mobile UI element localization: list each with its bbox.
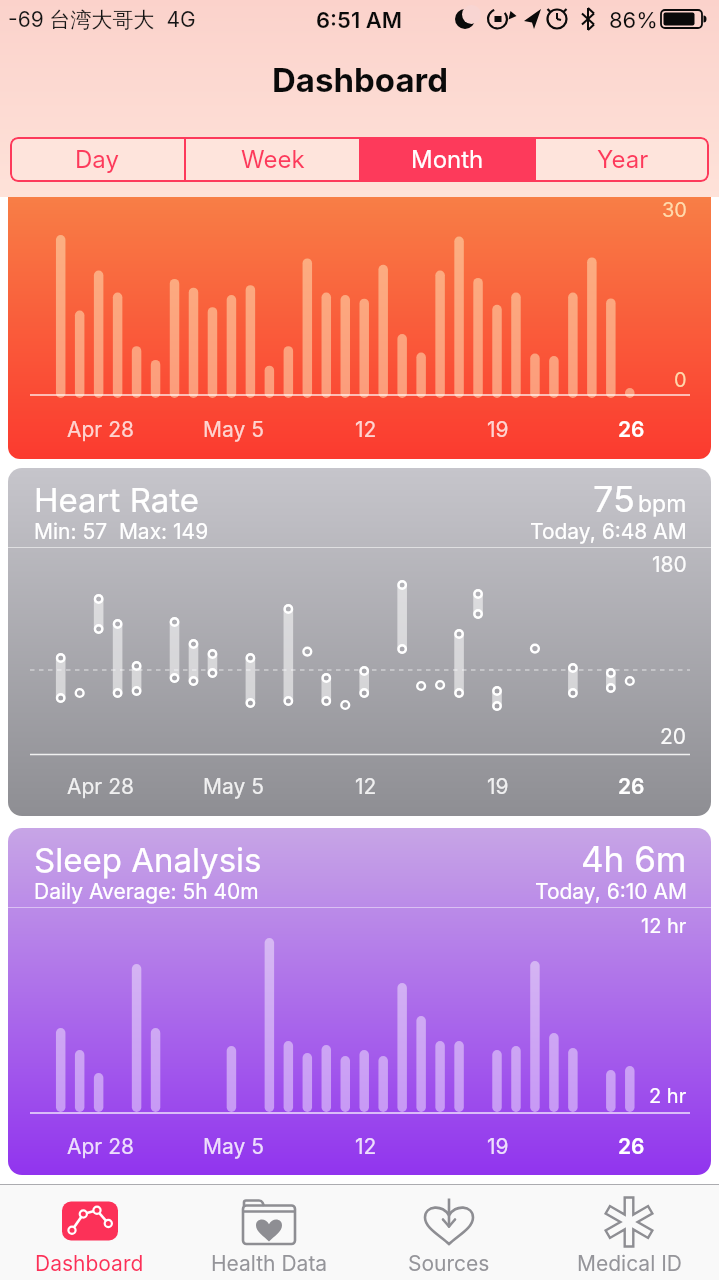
staticText: 2 hr (649, 1084, 687, 1108)
staticText: 0 (674, 368, 687, 392)
staticText: Sleep Analysis (34, 840, 262, 880)
staticText: 75 (593, 477, 635, 521)
staticText: 26 (618, 774, 645, 799)
staticText: Health Data (211, 1251, 328, 1276)
staticText: Daily Average: 5h 40m (34, 879, 259, 904)
button[interactable]: Dashboard (0, 1185, 179, 1280)
staticText: Month (411, 145, 484, 174)
staticText: 4h 6m (581, 838, 687, 880)
staticText: 30 (662, 198, 687, 222)
staticText: 6:51 AM (316, 7, 403, 34)
button[interactable]: Heart Rate (8, 468, 711, 816)
staticText: Heart Rate (34, 480, 199, 520)
staticText: Sources (408, 1251, 490, 1276)
staticText: 86% (609, 7, 658, 34)
staticText: 26 (618, 1134, 645, 1159)
staticText: Min: 57 Max: 149 (34, 519, 209, 544)
staticText: Day (75, 145, 119, 174)
staticText: Apr 28 (67, 1134, 134, 1159)
staticText: Dashboard (35, 1251, 144, 1276)
staticText: 19 (487, 1134, 509, 1159)
button[interactable]: Year (536, 137, 709, 182)
staticText: 26 (618, 417, 645, 442)
button[interactable]: Medical ID (539, 1185, 719, 1280)
staticText: 12 (355, 774, 377, 799)
staticText: -69 台湾大哥大 4G (8, 7, 196, 34)
staticText: 12 hr (641, 914, 687, 938)
button[interactable]: Sleep Analysis (8, 828, 711, 1175)
staticText: Today, 6:10 AM (535, 879, 687, 904)
button[interactable]: Day (10, 137, 184, 182)
staticText: 20 (660, 724, 687, 749)
staticText: Week (241, 145, 305, 174)
staticText: Apr 28 (67, 417, 134, 442)
staticText: Year (597, 145, 649, 174)
staticText: Apr 28 (67, 774, 134, 799)
staticText: 180 (652, 552, 687, 577)
staticText: May 5 (203, 417, 264, 442)
staticText: May 5 (203, 774, 264, 799)
button[interactable]: Sources (359, 1185, 539, 1280)
button[interactable]: 30 (8, 197, 711, 459)
staticText: 12 (355, 1134, 377, 1159)
staticText: Dashboard (272, 60, 448, 100)
button[interactable]: Health Data (179, 1185, 359, 1280)
staticText: 19 (487, 417, 509, 442)
button[interactable]: Week (186, 137, 359, 182)
staticText: 19 (487, 774, 509, 799)
staticText: Today, 6:48 AM (530, 519, 687, 544)
staticText: bpm (638, 490, 687, 518)
button[interactable]: Month (361, 137, 534, 182)
staticText: May 5 (203, 1134, 264, 1159)
staticText: Medical ID (577, 1251, 682, 1276)
staticText: 12 (355, 417, 377, 442)
